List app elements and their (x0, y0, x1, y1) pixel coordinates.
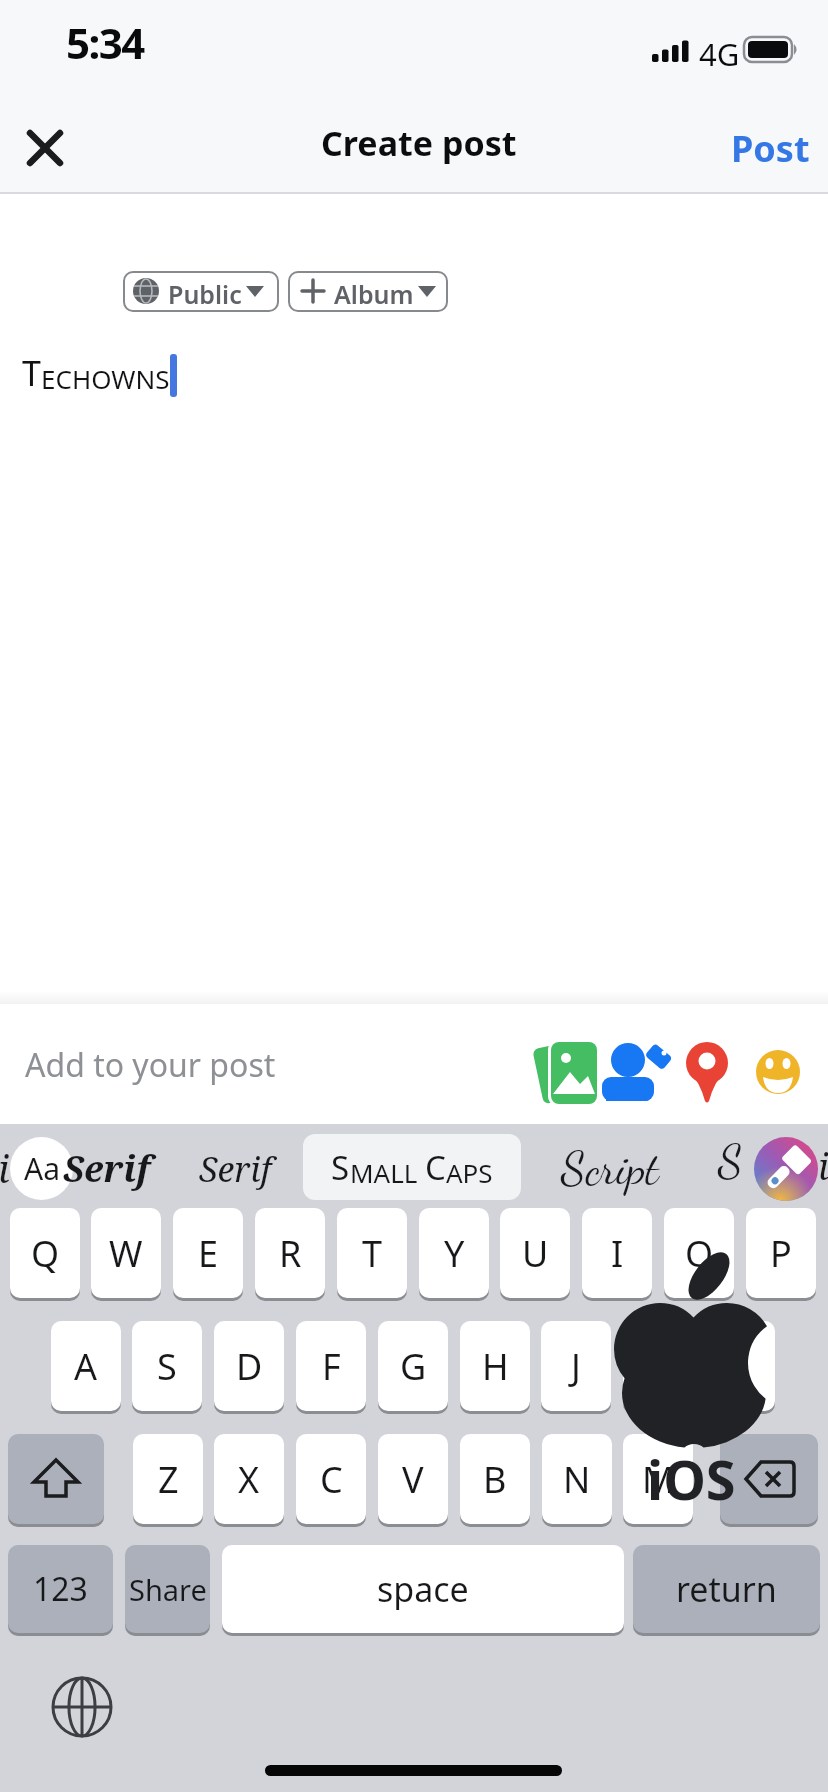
button[interactable]: C (296, 1434, 366, 1524)
staticText: F (322, 1342, 341, 1391)
staticText: G (400, 1342, 427, 1391)
button[interactable]: K (623, 1321, 693, 1411)
button[interactable]: P (746, 1208, 816, 1298)
staticText: W (109, 1229, 143, 1278)
staticText: Post (731, 124, 810, 173)
staticText: space (377, 1566, 469, 1612)
button[interactable]: Aa (10, 1137, 73, 1200)
staticText: Public (168, 277, 242, 311)
staticText: iOS (647, 1442, 736, 1516)
staticText: T (22, 350, 41, 396)
staticText: Y (444, 1229, 465, 1278)
staticText: ECHOWNS (41, 361, 170, 396)
staticText: O (685, 1229, 714, 1278)
button[interactable]: E (173, 1208, 243, 1298)
button[interactable] (680, 1035, 736, 1109)
staticText: P (770, 1229, 792, 1278)
staticText: X (238, 1455, 260, 1504)
button[interactable] (752, 1035, 808, 1109)
button[interactable]: J (541, 1321, 611, 1411)
staticText: Script (561, 1141, 659, 1196)
button[interactable]: S (303, 1134, 521, 1200)
staticText: Share (129, 1570, 207, 1609)
staticText: C (320, 1455, 343, 1504)
button[interactable]: F (296, 1321, 366, 1411)
staticText: J (571, 1342, 581, 1391)
button[interactable]: V (378, 1434, 448, 1524)
button[interactable]: L (705, 1321, 775, 1411)
button[interactable]: N (542, 1434, 612, 1524)
button[interactable] (530, 1035, 600, 1109)
staticText: it (818, 1142, 828, 1191)
button[interactable] (288, 271, 448, 312)
button[interactable]: return (633, 1545, 820, 1633)
button[interactable]: Z (133, 1434, 203, 1524)
button[interactable]: Q (10, 1208, 80, 1298)
button[interactable]: Y (419, 1208, 489, 1298)
staticText: Serif (199, 1146, 272, 1192)
staticText: 5:34 (66, 14, 144, 71)
staticText: Q (31, 1229, 60, 1278)
button[interactable]: space (222, 1545, 624, 1633)
staticText: L (731, 1342, 750, 1391)
staticText: M (642, 1455, 675, 1504)
button[interactable] (720, 1434, 818, 1524)
staticText: E (198, 1229, 219, 1278)
button[interactable]: A (51, 1321, 121, 1411)
button[interactable]: D (214, 1321, 284, 1411)
button[interactable]: W (91, 1208, 161, 1298)
button[interactable]: 123 (8, 1545, 113, 1633)
button[interactable]: B (460, 1434, 530, 1524)
staticText: i (0, 1142, 10, 1194)
button[interactable]: O (664, 1208, 734, 1298)
staticText: R (279, 1229, 302, 1278)
staticText: B (483, 1455, 507, 1504)
button[interactable]: G (378, 1321, 448, 1411)
staticText: T (362, 1229, 383, 1278)
staticText: Aa (24, 1148, 60, 1189)
button[interactable] (8, 1434, 104, 1524)
button[interactable]: R (255, 1208, 325, 1298)
button[interactable]: H (460, 1321, 530, 1411)
staticText: N (563, 1455, 591, 1504)
button[interactable]: X (214, 1434, 284, 1524)
staticText: Create post (321, 120, 517, 166)
staticText: S (331, 1145, 350, 1190)
button[interactable]: Script (535, 1137, 685, 1200)
staticText: return (676, 1566, 777, 1612)
staticText: APS (446, 1155, 493, 1190)
button[interactable]: I (582, 1208, 652, 1298)
staticText: A (74, 1342, 98, 1391)
staticText: I (611, 1229, 624, 1278)
staticText: V (402, 1455, 424, 1504)
button[interactable]: Serif (190, 1137, 280, 1200)
staticText: MALL (350, 1155, 425, 1190)
button[interactable]: Serif (62, 1137, 152, 1200)
button[interactable]: M (623, 1434, 693, 1524)
staticText: Serif (63, 1144, 151, 1193)
staticText: S (718, 1134, 743, 1189)
staticText: H (482, 1342, 509, 1391)
staticText: 4G (699, 33, 740, 75)
button[interactable]: Share (125, 1545, 210, 1633)
staticText: Add to your post (25, 1043, 276, 1087)
button[interactable]: T (337, 1208, 407, 1298)
button[interactable] (123, 271, 279, 312)
staticText: Album (334, 277, 414, 311)
button[interactable] (16, 120, 76, 176)
button[interactable] (605, 1035, 669, 1109)
staticText: 123 (33, 1567, 88, 1611)
button[interactable]: Post (720, 120, 820, 176)
staticText: S (157, 1342, 177, 1391)
button[interactable]: U (500, 1208, 570, 1298)
staticText: Z (158, 1455, 179, 1504)
staticText: D (236, 1342, 263, 1391)
staticText: C (425, 1145, 446, 1190)
button[interactable]: S (132, 1321, 202, 1411)
staticText: U (522, 1229, 549, 1278)
